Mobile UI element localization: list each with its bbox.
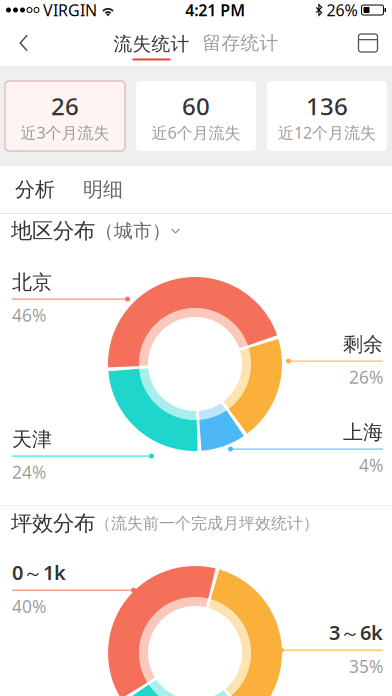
staticText: 26% — [349, 366, 383, 389]
staticText: （城市） — [95, 219, 171, 242]
staticText: 流失统计 — [113, 32, 189, 55]
button[interactable]: Calendar — [348, 20, 388, 66]
staticText: 近12个月流失 — [278, 122, 376, 143]
staticText: 坪效分布 — [11, 510, 95, 537]
staticText: 上海 — [343, 420, 383, 445]
staticText: 35% — [349, 655, 383, 678]
staticText: 近3个月流失 — [20, 122, 109, 143]
staticText: 近6个月流失 — [151, 122, 240, 143]
button[interactable]: Back — [4, 20, 44, 66]
button[interactable]: 60 — [136, 81, 256, 151]
button[interactable]: 明细 — [69, 166, 137, 213]
staticText: 26% — [322, 0, 361, 21]
staticText: 46% — [12, 304, 46, 327]
staticText: VIRGIN — [39, 0, 101, 21]
staticText: 地区分布 — [11, 218, 95, 244]
staticText: 留存统计 — [202, 31, 278, 54]
button[interactable]: 留存统计 — [189, 31, 278, 54]
staticText: 26 — [51, 90, 79, 122]
staticText: 4% — [359, 454, 383, 477]
staticText: 0～1k — [12, 559, 66, 586]
staticText: 北京 — [12, 270, 52, 295]
staticText: 3～6k — [329, 619, 383, 646]
staticText: 天津 — [12, 427, 52, 452]
button[interactable]: 136 — [267, 81, 387, 151]
staticText: （流失前一个完成月坪效统计） — [95, 514, 319, 533]
staticText: 60 — [182, 90, 210, 122]
staticText: 136 — [306, 90, 348, 122]
button[interactable]: 流失统计 — [113, 25, 189, 60]
button[interactable]: 分析 — [1, 166, 69, 213]
staticText: 剩余 — [343, 332, 383, 357]
staticText: 分析 — [15, 177, 55, 202]
staticText: 明细 — [83, 177, 123, 202]
staticText: 4:21 PM — [185, 0, 245, 21]
button[interactable]: 26 — [5, 81, 125, 151]
staticText: 24% — [12, 461, 46, 484]
staticText: 40% — [12, 595, 46, 618]
